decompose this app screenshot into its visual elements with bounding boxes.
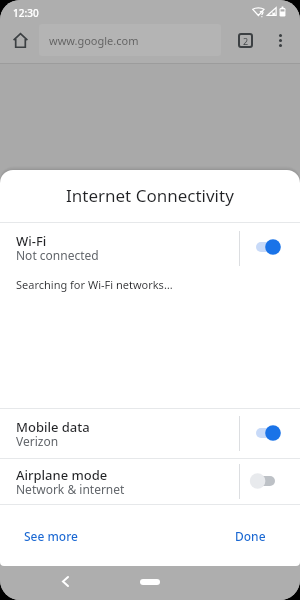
staticText: 2	[243, 35, 249, 47]
button[interactable]: www.google.com	[39, 24, 221, 56]
button[interactable]: Tabs	[230, 24, 260, 56]
button[interactable]: Airplane mode toggle	[240, 459, 300, 504]
staticText: See more	[24, 528, 78, 544]
staticText: Done	[235, 528, 266, 544]
staticText: Verizon	[16, 433, 59, 449]
staticText: Not connected	[16, 247, 99, 263]
button[interactable]: Mobile data	[0, 409, 300, 458]
staticText: Internet Connectivity	[66, 184, 234, 207]
staticText: 12:30	[13, 6, 39, 20]
button[interactable]: More options	[266, 24, 294, 56]
button[interactable]: Wi-Fi toggle	[240, 223, 300, 273]
button[interactable]: Back	[53, 569, 77, 593]
staticText: Mobile data	[16, 418, 90, 436]
staticText: Network & internet	[16, 481, 125, 497]
staticText: Searching for Wi-Fi networks…	[16, 277, 173, 292]
button[interactable]: Home	[5, 24, 35, 56]
button[interactable]: Home	[140, 579, 160, 585]
button[interactable]: Wi-Fi	[0, 223, 300, 273]
button[interactable]: See more	[14, 521, 88, 551]
staticText: www.google.com	[49, 33, 139, 48]
button[interactable]: Airplane mode	[0, 459, 300, 504]
button[interactable]: Mobile data toggle	[240, 409, 300, 458]
staticText: Airplane mode	[16, 466, 108, 484]
button[interactable]: Done	[225, 521, 276, 551]
staticText: Wi-Fi	[16, 232, 47, 250]
